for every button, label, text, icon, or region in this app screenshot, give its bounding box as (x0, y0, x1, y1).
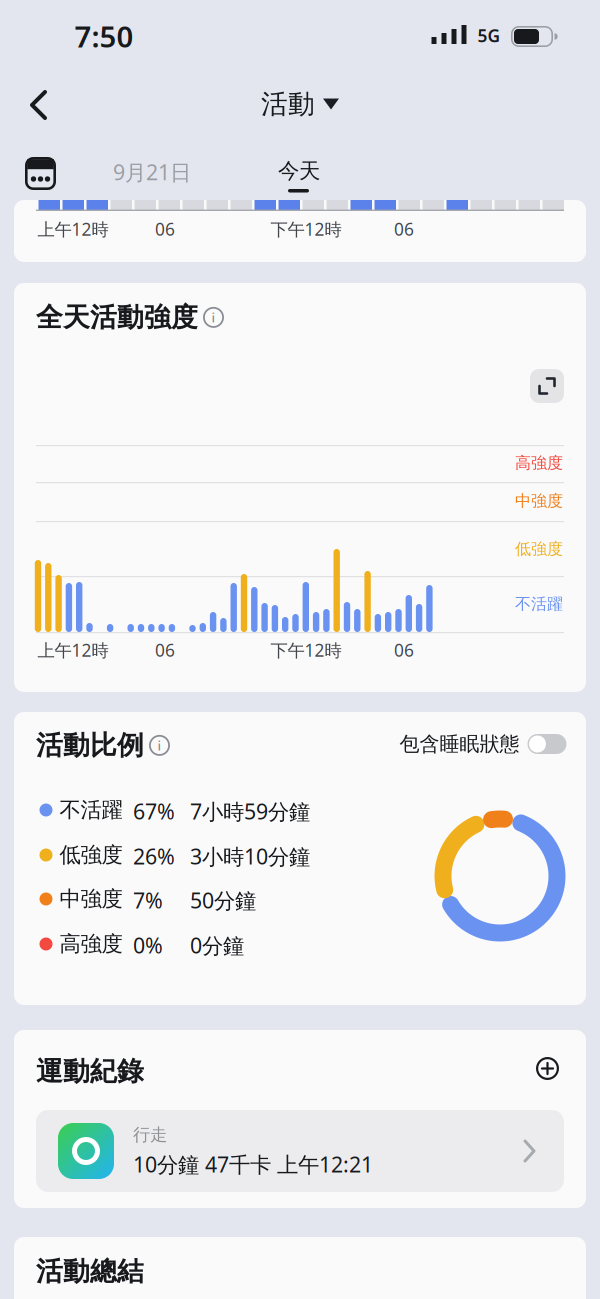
button[interactable]: 活動 (261, 88, 339, 120)
staticText: 7小時59分鐘 (190, 797, 310, 825)
staticText: 包含睡眠狀態 (399, 732, 519, 756)
button[interactable]: 包含睡眠狀態 (399, 732, 566, 756)
button[interactable]: 說明 (203, 307, 224, 328)
staticText: 低強度 (59, 842, 122, 868)
staticText: 0分鐘 (190, 931, 244, 959)
staticText: 高強度 (515, 453, 563, 473)
staticText: 高強度 (59, 931, 122, 957)
staticText: 7:50 (74, 16, 133, 55)
staticText: 活動總結 (36, 1255, 144, 1288)
button[interactable]: 展開 (530, 369, 564, 403)
staticText: 06 (155, 217, 175, 240)
staticText: 7% (133, 886, 163, 914)
staticText: 下午12時 (270, 638, 341, 661)
staticText: 運動紀錄 (36, 1055, 144, 1088)
staticText: 今天 (278, 158, 320, 184)
button[interactable]: 說明 (149, 735, 170, 756)
staticText: 06 (394, 217, 414, 240)
staticText: 上午12時 (37, 638, 108, 661)
staticText: 低強度 (515, 539, 563, 559)
staticText: 5G (477, 24, 500, 47)
button[interactable]: 行走 (36, 1110, 564, 1192)
button[interactable]: 今天 (278, 158, 320, 184)
staticText: 06 (394, 638, 414, 661)
staticText: 活動 (261, 88, 315, 120)
staticText: 0% (133, 931, 163, 959)
staticText: 10分鐘 47千卡 上午12:21 (133, 1150, 373, 1178)
staticText: i (211, 308, 215, 326)
staticText: 不活躍 (59, 797, 122, 823)
button[interactable]: 9月21日 (113, 158, 191, 186)
staticText: i (157, 736, 161, 754)
staticText: 50分鐘 (190, 886, 256, 914)
staticText: 行走 (133, 1124, 167, 1145)
staticText: 3小時10分鐘 (190, 842, 310, 870)
staticText: 9月21日 (113, 158, 191, 186)
button[interactable]: 新增運動 (536, 1057, 559, 1080)
staticText: 不活躍 (515, 594, 563, 614)
staticText: 上午12時 (37, 217, 108, 240)
staticText: 全天活動強度 (36, 301, 198, 334)
button[interactable]: 返回 (28, 90, 50, 120)
button[interactable]: 日曆 (25, 157, 56, 190)
staticText: 26% (133, 842, 175, 870)
staticText: 06 (155, 638, 175, 661)
staticText: 中強度 (59, 886, 122, 912)
staticText: 下午12時 (270, 217, 341, 240)
staticText: 活動比例 (36, 729, 144, 762)
staticText: 中強度 (515, 491, 563, 511)
staticText: 67% (133, 797, 175, 825)
